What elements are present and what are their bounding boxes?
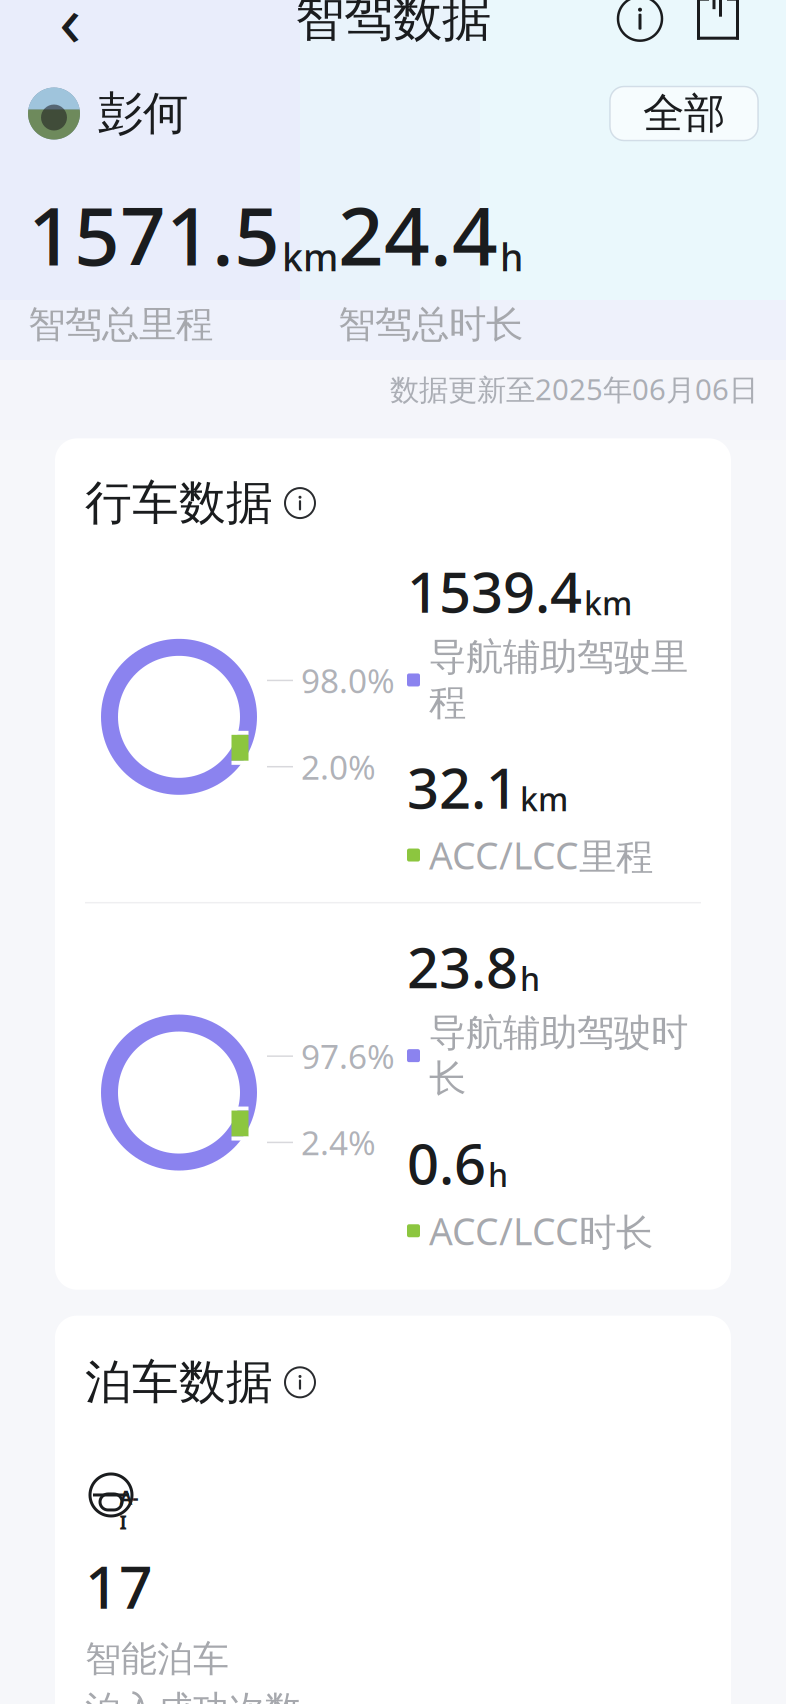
staticText: 24.4 bbox=[338, 181, 498, 288]
staticText: 智能泊车 bbox=[85, 1637, 229, 1681]
staticText: ACC/LCC时长 bbox=[429, 1206, 653, 1256]
staticText: 32.1 bbox=[407, 750, 518, 824]
staticText: 智驾总时长 bbox=[338, 302, 523, 347]
staticText: 行车数据 bbox=[85, 474, 273, 532]
staticText: ACC/LCC里程 bbox=[429, 830, 653, 880]
staticText: km bbox=[520, 778, 568, 820]
staticText: ‹ bbox=[59, 0, 81, 66]
staticText: h bbox=[488, 1153, 508, 1196]
staticText: 17 bbox=[85, 1547, 153, 1625]
staticText: 2.4% bbox=[301, 1120, 376, 1165]
staticText: 导航辅助驾驶里程 bbox=[429, 634, 688, 726]
staticText: 全部 bbox=[643, 88, 725, 139]
staticText: h bbox=[500, 232, 523, 282]
staticText: 彭何 bbox=[98, 86, 188, 141]
staticText: 泊车数据 bbox=[85, 1354, 273, 1411]
staticText: 98.0% bbox=[301, 658, 395, 703]
button[interactable]: 彭何 bbox=[28, 86, 188, 141]
button[interactable]: Back bbox=[38, 0, 102, 51]
staticText: 泊入成功次数 bbox=[85, 1687, 301, 1704]
staticText: 0.6 bbox=[407, 1125, 486, 1200]
button[interactable]: Info bbox=[610, 0, 670, 49]
button[interactable]: Share bbox=[688, 0, 748, 49]
staticText: 导航辅助驾驶时长 bbox=[429, 1010, 688, 1101]
staticText: km bbox=[584, 582, 632, 624]
staticText: AI bbox=[119, 1485, 138, 1535]
staticText: 1539.4 bbox=[407, 554, 582, 628]
staticText: 1571.5 bbox=[28, 181, 280, 288]
staticText: 数据更新至2025年06月06日 bbox=[390, 369, 758, 408]
staticText: 23.8 bbox=[407, 929, 518, 1004]
staticText: 97.6% bbox=[301, 1034, 395, 1078]
staticText: 智驾总里程 bbox=[28, 302, 213, 347]
button[interactable]: 全部 bbox=[610, 86, 758, 140]
staticText: h bbox=[520, 957, 540, 1000]
staticText: 智驾数据 bbox=[295, 0, 491, 49]
staticText: km bbox=[282, 232, 338, 282]
staticText: 2.0% bbox=[301, 745, 376, 789]
